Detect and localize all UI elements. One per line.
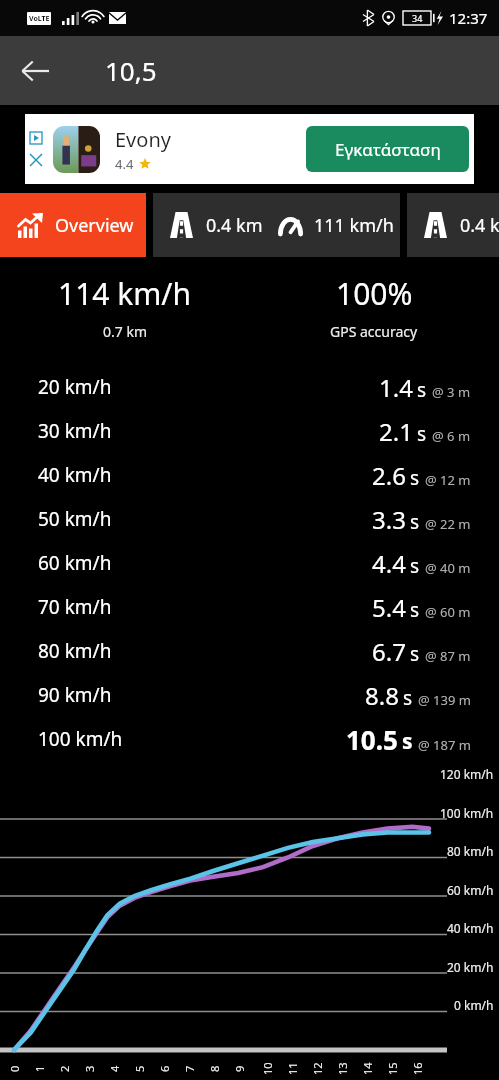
button[interactable]: 30 km/h bbox=[0, 409, 499, 453]
staticText: s bbox=[417, 421, 427, 447]
button[interactable]: 100 km/h bbox=[0, 717, 499, 761]
button[interactable]: 90 km/h bbox=[0, 673, 499, 717]
staticText: 100 km/h bbox=[440, 805, 494, 821]
button[interactable]: Εγκατάσταση bbox=[306, 126, 469, 172]
staticText: 0 bbox=[7, 1065, 22, 1072]
staticText: @ 6 m bbox=[432, 427, 471, 445]
staticText: 5.4 bbox=[372, 591, 406, 624]
staticText: 111 km/h bbox=[314, 213, 394, 238]
button[interactable]: 0.4 km bbox=[407, 193, 499, 257]
button[interactable]: 60 km/h bbox=[0, 541, 499, 585]
staticText: 3 bbox=[82, 1065, 97, 1072]
staticText: s bbox=[403, 685, 413, 711]
staticText: 7 bbox=[182, 1065, 197, 1072]
staticText: 80 km/h bbox=[447, 843, 494, 859]
staticText: 120 km/h bbox=[440, 766, 494, 782]
staticText: 1.4 bbox=[379, 371, 413, 404]
staticText: 34 bbox=[412, 12, 423, 24]
staticText: 60 km/h bbox=[38, 550, 112, 576]
staticText: 8 bbox=[207, 1065, 222, 1072]
staticText: 2 bbox=[57, 1065, 72, 1072]
staticText: GPS accuracy bbox=[330, 322, 418, 341]
staticText: 10 bbox=[260, 1062, 275, 1075]
staticText: 10.5 bbox=[346, 722, 398, 757]
staticText: 114 km/h bbox=[58, 273, 192, 314]
staticText: 0.4 km bbox=[206, 213, 263, 238]
staticText: 3.3 bbox=[372, 503, 406, 536]
staticText: 90 km/h bbox=[38, 682, 112, 708]
button[interactable]: Evony bbox=[25, 114, 474, 184]
button[interactable]: 0.4 km bbox=[153, 193, 400, 257]
staticText: 4 bbox=[107, 1065, 122, 1072]
button[interactable]: Overview bbox=[0, 193, 146, 257]
staticText: 12:37 bbox=[449, 8, 488, 28]
staticText: 80 km/h bbox=[38, 638, 112, 664]
staticText: s bbox=[417, 377, 427, 403]
staticText: Evony bbox=[115, 126, 171, 153]
staticText: @ 60 m bbox=[425, 603, 471, 621]
button[interactable]: 70 km/h bbox=[0, 585, 499, 629]
staticText: 8.8 bbox=[365, 679, 399, 712]
staticText: 20 km/h bbox=[447, 959, 494, 975]
staticText: 10,5 bbox=[105, 53, 157, 88]
staticText: 100% bbox=[336, 273, 413, 314]
staticText: 6.7 bbox=[372, 635, 406, 668]
staticText: @ 40 m bbox=[425, 559, 471, 577]
staticText: 9 bbox=[232, 1065, 247, 1072]
staticText: 2.1 bbox=[379, 415, 413, 448]
staticText: 40 km/h bbox=[38, 462, 112, 488]
staticText: 11 bbox=[285, 1062, 300, 1075]
staticText: 50 km/h bbox=[38, 506, 112, 532]
staticText: 2.6 bbox=[372, 459, 406, 492]
staticText: 12 bbox=[310, 1062, 325, 1075]
staticText: Overview bbox=[55, 213, 134, 238]
staticText: 4.4 bbox=[115, 155, 134, 173]
staticText: @ 87 m bbox=[425, 647, 471, 665]
staticText: @ 3 m bbox=[432, 383, 471, 401]
staticText: 4.4 bbox=[372, 547, 406, 580]
staticText: 40 km/h bbox=[447, 920, 494, 936]
button[interactable]: 20 km/h bbox=[0, 365, 499, 409]
staticText: @ 139 m bbox=[418, 691, 471, 709]
staticText: VoLTE bbox=[29, 14, 50, 24]
staticText: 0.7 km bbox=[103, 322, 147, 341]
staticText: 13 bbox=[335, 1062, 350, 1075]
staticText: 15 bbox=[385, 1062, 400, 1075]
staticText: 16 bbox=[410, 1062, 425, 1075]
staticText: 70 km/h bbox=[38, 594, 112, 620]
button[interactable]: 40 km/h bbox=[0, 453, 499, 497]
staticText: 0 km/h bbox=[454, 997, 494, 1013]
staticText: s bbox=[410, 553, 420, 579]
staticText: s bbox=[402, 727, 413, 756]
staticText: 1 bbox=[32, 1065, 47, 1072]
button[interactable]: 80 km/h bbox=[0, 629, 499, 673]
staticText: @ 187 m bbox=[418, 736, 471, 754]
staticText: 14 bbox=[360, 1062, 375, 1075]
staticText: 0.4 km bbox=[460, 213, 499, 238]
staticText: s bbox=[410, 509, 420, 535]
staticText: s bbox=[410, 597, 420, 623]
staticText: 6 bbox=[157, 1065, 172, 1072]
staticText: s bbox=[410, 641, 420, 667]
staticText: 30 km/h bbox=[38, 418, 112, 444]
staticText: 60 km/h bbox=[447, 882, 494, 898]
staticText: Εγκατάσταση bbox=[335, 138, 441, 161]
button[interactable]: Back bbox=[8, 44, 62, 98]
staticText: @ 22 m bbox=[425, 515, 471, 533]
staticText: s bbox=[410, 465, 420, 491]
staticText: 5 bbox=[132, 1065, 147, 1072]
staticText: @ 12 m bbox=[425, 471, 471, 489]
button[interactable]: 50 km/h bbox=[0, 497, 499, 541]
staticText: 100 km/h bbox=[38, 726, 123, 752]
staticText: 20 km/h bbox=[38, 374, 112, 400]
